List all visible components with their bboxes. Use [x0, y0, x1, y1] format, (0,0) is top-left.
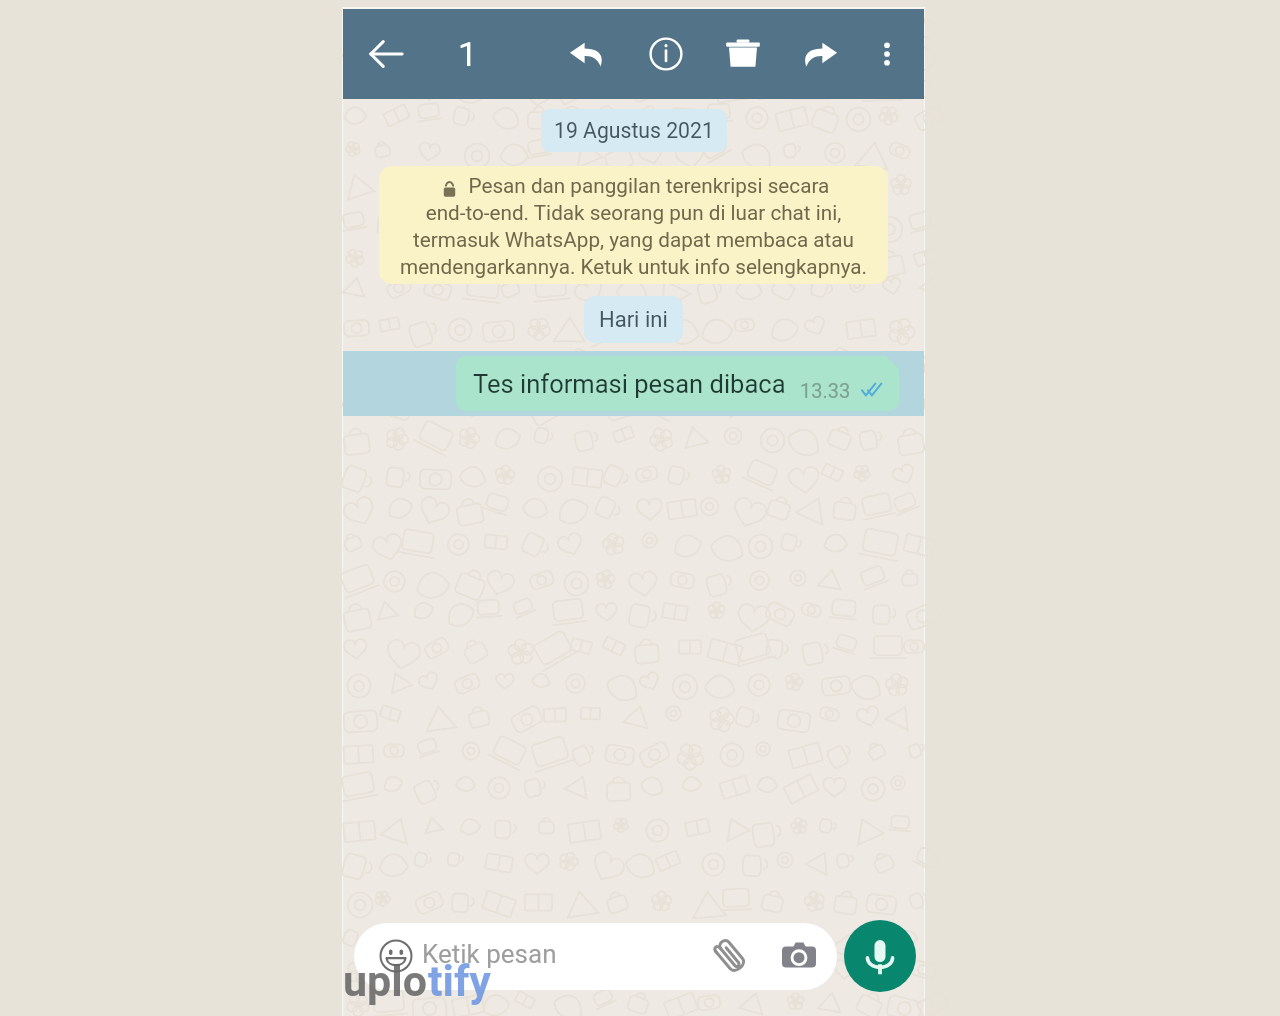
button[interactable]: Reply: [562, 28, 614, 80]
staticText: 13.33: [800, 379, 851, 402]
button[interactable]: More options: [861, 28, 913, 80]
staticText: 19 Agustus 2021: [554, 118, 714, 143]
staticText: Tes informasi pesan dibaca: [473, 369, 786, 399]
button[interactable]: Tes informasi pesan dibaca: [456, 356, 899, 411]
staticText: Ketik pesan: [422, 939, 557, 969]
staticText: tify: [428, 956, 491, 1006]
button[interactable]: Record voice message: [844, 920, 916, 992]
button[interactable]: Hari ini: [584, 296, 683, 343]
staticText: Pesan dan panggilan terenkripsi secara e…: [379, 174, 888, 279]
button[interactable]: Tes informasi pesan dibaca: [343, 351, 924, 416]
button[interactable]: Emoji: [354, 923, 837, 990]
staticText: 1: [458, 34, 478, 74]
button[interactable]: Back: [360, 28, 412, 80]
button[interactable]: Delete: [717, 28, 769, 80]
button[interactable]: Message info: [640, 28, 692, 80]
button[interactable]: Camera: [782, 939, 816, 973]
staticText: uplo: [343, 956, 428, 1006]
button[interactable]: Pesan dan panggilan terenkripsi secara e…: [379, 166, 888, 284]
button[interactable]: 1: [444, 26, 492, 82]
button[interactable]: Attach: [710, 936, 750, 976]
button[interactable]: Forward: [793, 28, 845, 80]
button[interactable]: Emoji: [379, 939, 413, 973]
button[interactable]: 19 Agustus 2021: [541, 109, 727, 152]
staticText: Hari ini: [599, 307, 668, 333]
